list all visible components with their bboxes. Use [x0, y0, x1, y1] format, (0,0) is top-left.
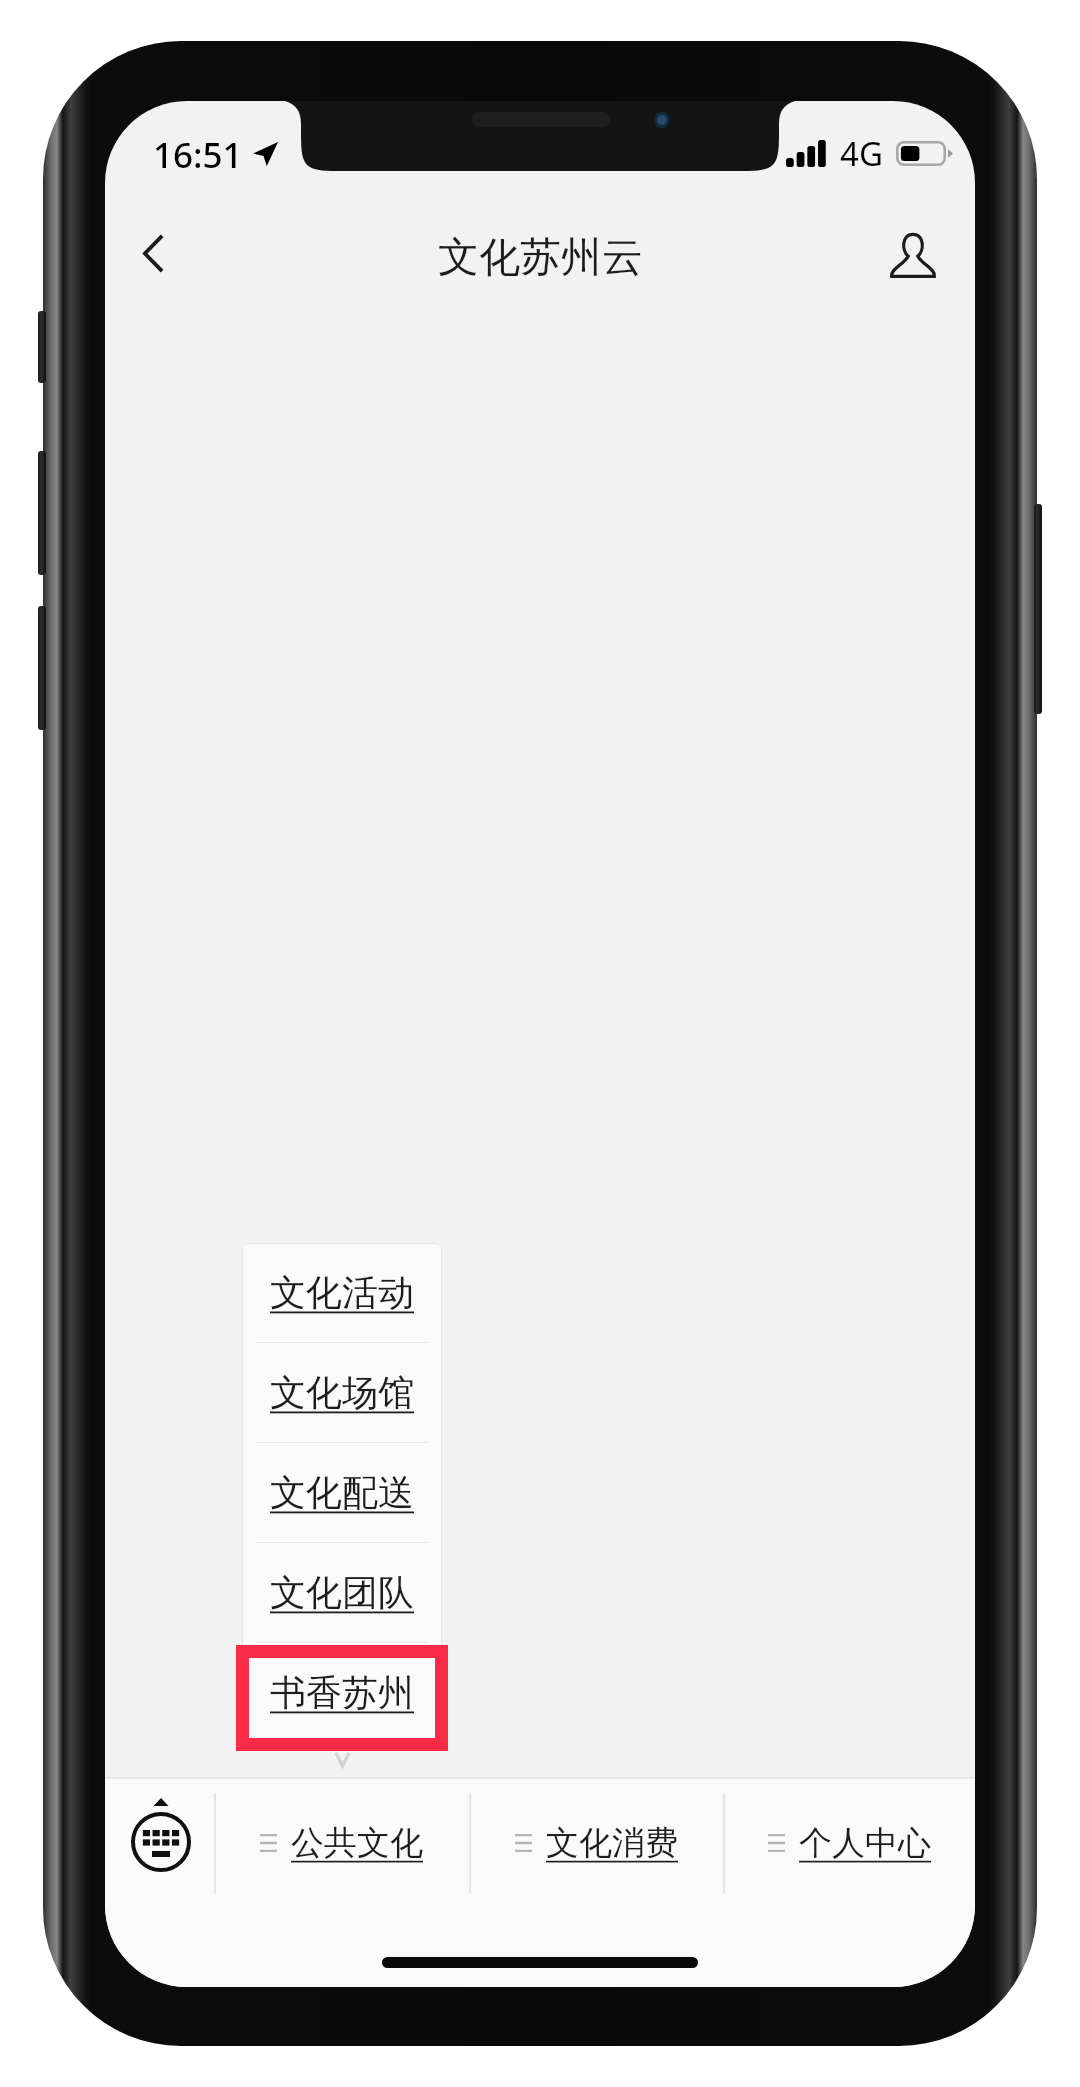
- staticText: 文化配送: [270, 1470, 414, 1515]
- button[interactable]: Back: [115, 220, 191, 296]
- button[interactable]: 文化消费: [469, 1777, 723, 1909]
- staticText: 文化场馆: [270, 1370, 414, 1415]
- staticText: 书香苏州: [270, 1670, 414, 1715]
- staticText: 文化消费: [546, 1822, 678, 1864]
- button[interactable]: 公共文化: [214, 1777, 469, 1909]
- staticText: 4G: [840, 131, 883, 176]
- button[interactable]: Profile: [875, 220, 951, 296]
- staticText: 个人中心: [799, 1822, 931, 1864]
- button[interactable]: 文化配送: [242, 1443, 442, 1542]
- button[interactable]: 文化团队: [242, 1543, 442, 1642]
- staticText: 16:51: [153, 131, 243, 179]
- staticText: 公共文化: [291, 1822, 423, 1864]
- button[interactable]: 书香苏州: [242, 1643, 442, 1742]
- button[interactable]: 个人中心: [723, 1777, 975, 1909]
- staticText: 文化活动: [270, 1270, 414, 1315]
- button[interactable]: 文化场馆: [242, 1343, 442, 1442]
- button[interactable]: Keyboard: [108, 1777, 213, 1895]
- staticText: 文化苏州云: [438, 232, 643, 284]
- staticText: 文化团队: [270, 1570, 414, 1615]
- button[interactable]: 文化活动: [242, 1243, 442, 1342]
